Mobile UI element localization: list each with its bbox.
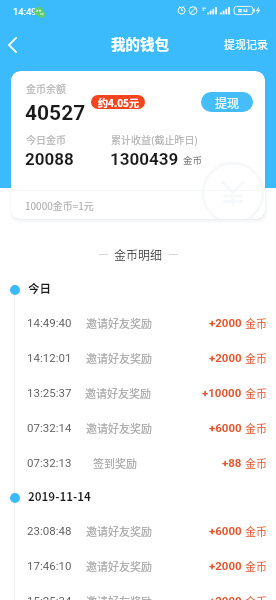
staticText: 金币余额 [26, 81, 66, 95]
staticText: +2000 [209, 316, 242, 329]
staticText: 金币明细 [114, 246, 163, 263]
staticText: +2000 [209, 351, 242, 364]
staticText: 约4.05元 [98, 95, 139, 109]
button[interactable]: 15:25:34 [0, 583, 276, 600]
staticText: 邀请好友奖励 [86, 315, 152, 331]
staticText: 1300439 [110, 149, 179, 169]
staticText: +6000 [209, 421, 242, 434]
staticText: 提现记录 [224, 36, 268, 52]
staticText: 金币 [245, 385, 267, 401]
staticText: 金币 [183, 153, 203, 167]
staticText: 20088 [25, 149, 74, 169]
staticText: 邀请好友奖励 [86, 523, 152, 539]
staticText: 13:25:37 [27, 386, 72, 399]
staticText: 金币 [245, 315, 267, 331]
staticText: +2000 [209, 559, 242, 572]
staticText: +6000 [209, 524, 242, 537]
button[interactable]: 14:49:40 [0, 305, 276, 340]
button[interactable]: 提现记录 [214, 32, 276, 56]
button[interactable]: 提现 [201, 92, 253, 112]
staticText: 金币 [245, 558, 267, 574]
staticText: 邀请好友奖励 [85, 385, 151, 401]
staticText: +2000 [209, 594, 242, 600]
staticText: 40527 [25, 101, 86, 126]
staticText: 07:32:13 [27, 456, 72, 469]
staticText: 签到奖励 [93, 455, 137, 471]
staticText: 14:49 [13, 6, 37, 17]
button[interactable]: 23:08:48 [0, 513, 276, 548]
staticText: +88 [222, 456, 242, 469]
staticText: +10000 [202, 386, 242, 399]
staticText: 我的钱包 [111, 33, 169, 54]
staticText: 金币 [245, 523, 267, 539]
staticText: 金币 [245, 455, 267, 471]
staticText: 15:25:34 [27, 594, 72, 600]
staticText: 07:32:14 [27, 421, 72, 434]
staticText: 累计收益(截止昨日) [111, 132, 198, 146]
staticText: 14:12:01 [27, 351, 72, 364]
staticText: 17:46:10 [27, 559, 72, 572]
staticText: 金币 [245, 350, 267, 366]
staticText: 今日金币 [26, 132, 66, 146]
staticText: 提现 [215, 94, 240, 111]
button[interactable]: 07:32:14 [0, 410, 276, 445]
staticText: 金币 [245, 420, 267, 436]
button[interactable]: 13:25:37 [0, 375, 276, 410]
button[interactable]: 14:12:01 [0, 340, 276, 375]
staticText: 23:08:48 [27, 524, 72, 537]
button[interactable]: 07:32:13 [0, 445, 276, 480]
staticText: 邀请好友奖励 [86, 420, 152, 436]
staticText: 14:49:40 [27, 316, 72, 329]
staticText: 邀请好友奖励 [86, 558, 152, 574]
button[interactable]: 17:46:10 [0, 548, 276, 583]
staticText: 今日 [28, 280, 51, 297]
staticText: 10000金币=1元 [25, 198, 94, 212]
button[interactable]: Back [0, 31, 25, 59]
staticText: 金币 [245, 593, 267, 600]
staticText: 2019-11-14 [28, 488, 91, 505]
staticText: 邀请好友奖励 [86, 350, 152, 366]
staticText: 邀请好友奖励 [86, 593, 152, 600]
